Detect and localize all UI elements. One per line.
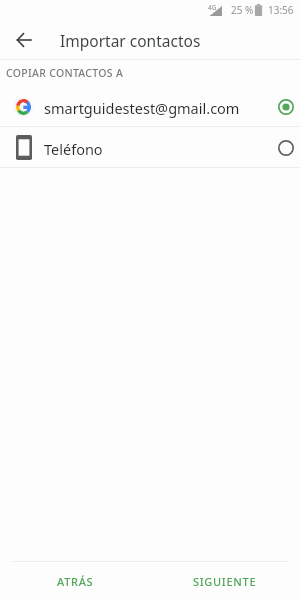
staticText: COPIAR CONTACTOS A bbox=[6, 66, 124, 80]
staticText: 25 % bbox=[231, 3, 254, 17]
button[interactable]: SIGUIENTE bbox=[150, 562, 300, 600]
staticText: SIGUIENTE bbox=[193, 574, 257, 589]
staticText: 4G bbox=[208, 3, 217, 12]
button[interactable]: Back bbox=[8, 24, 40, 56]
staticText: Teléfono bbox=[44, 139, 103, 159]
staticText: 13:56 bbox=[268, 3, 294, 17]
button[interactable]: ATRÁS bbox=[0, 562, 150, 600]
staticText: smartguidestest@gmail.com bbox=[44, 98, 240, 118]
staticText: Importar contactos bbox=[60, 30, 201, 51]
button[interactable]: Teléfono bbox=[0, 127, 300, 168]
button[interactable]: smartguidestest@gmail.com bbox=[0, 86, 300, 127]
staticText: ATRÁS bbox=[57, 574, 94, 589]
